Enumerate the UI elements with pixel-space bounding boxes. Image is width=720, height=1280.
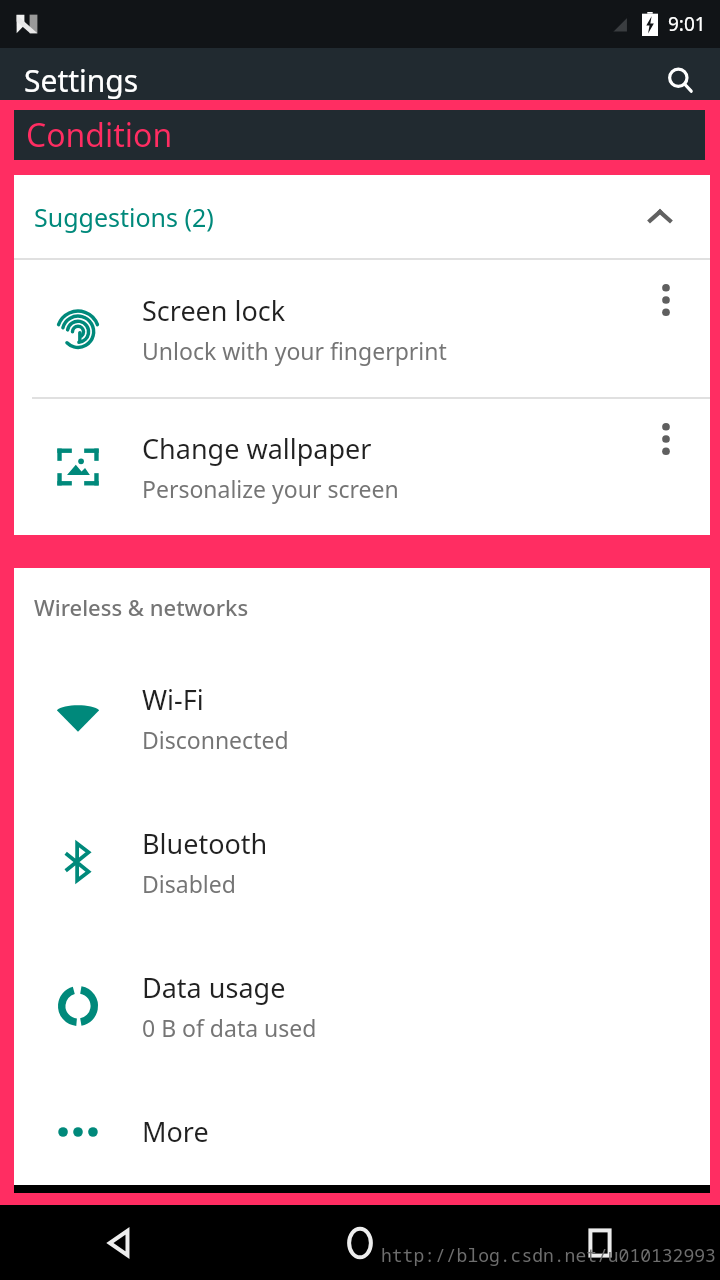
staticText: Bluetooth xyxy=(142,825,268,862)
staticText: Data usage xyxy=(142,969,286,1006)
staticText: Disconnected xyxy=(142,724,289,755)
staticText: Personalize your screen xyxy=(142,473,399,504)
other: Collapse suggestions xyxy=(638,195,682,239)
staticText: More xyxy=(142,1113,209,1150)
staticText: Disabled xyxy=(142,868,236,899)
staticText: 9:01 xyxy=(668,11,706,37)
button[interactable]: Recent apps xyxy=(480,1205,720,1280)
button[interactable]: More options xyxy=(644,278,688,322)
staticText: Change wallpaper xyxy=(142,430,372,467)
staticText: Screen lock xyxy=(142,292,286,329)
button[interactable]: Search xyxy=(658,58,702,102)
button[interactable]: Condition xyxy=(14,110,705,160)
button[interactable]: Change wallpaper xyxy=(14,399,710,535)
staticText: Unlock with your fingerprint xyxy=(142,335,447,366)
staticText: Condition xyxy=(26,113,173,157)
staticText: Wireless & networks xyxy=(34,592,249,622)
staticText: Settings xyxy=(24,60,139,101)
button[interactable]: Data usage xyxy=(14,934,710,1078)
button[interactable]: Wi-Fi xyxy=(14,646,710,790)
staticText: 0 B of data used xyxy=(142,1012,317,1043)
button[interactable]: Back xyxy=(0,1205,240,1280)
button[interactable]: Bluetooth xyxy=(14,790,710,934)
button[interactable]: More options xyxy=(644,417,688,461)
button[interactable]: Suggestions (2) xyxy=(14,175,710,258)
staticText: http://blog.csdn.net/u010132993 xyxy=(381,1243,716,1268)
staticText: Wi-Fi xyxy=(142,681,204,718)
button[interactable]: Home xyxy=(240,1205,480,1280)
button[interactable]: Screen lock xyxy=(14,260,710,397)
button[interactable]: More xyxy=(14,1078,710,1185)
staticText: Suggestions (2) xyxy=(34,200,214,234)
